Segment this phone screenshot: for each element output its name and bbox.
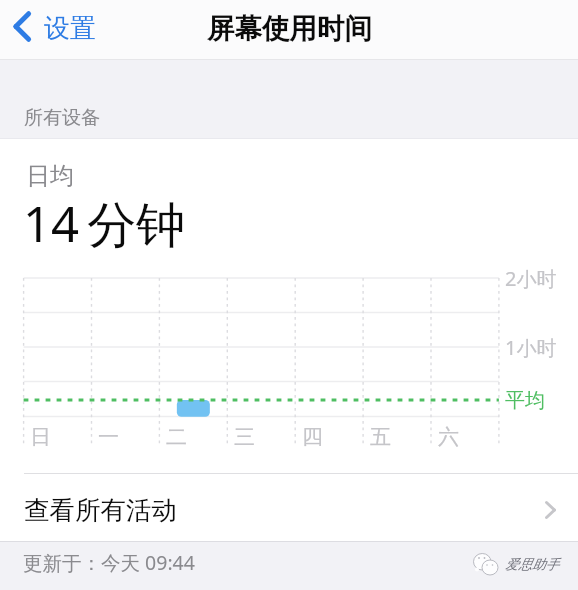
- other: WeChat: [472, 552, 500, 576]
- staticText: 1小时: [505, 334, 557, 361]
- staticText: 日均: [26, 161, 74, 191]
- staticText: 2小时: [505, 265, 557, 292]
- other: Back: [10, 11, 31, 42]
- staticText: 平均: [505, 388, 545, 413]
- staticText: 四: [302, 424, 323, 450]
- staticText: 更新于：今天 09:44: [23, 549, 195, 576]
- staticText: 六: [438, 424, 459, 450]
- staticText: 屏幕使用时间: [207, 12, 372, 47]
- staticText: 五: [370, 424, 391, 450]
- staticText: 二: [166, 424, 187, 450]
- staticText: 爱思助手: [505, 556, 559, 573]
- staticText: 一: [98, 424, 119, 450]
- button[interactable]: Back: [4, 6, 104, 50]
- staticText: 三: [234, 424, 255, 450]
- staticText: 查看所有活动: [24, 494, 177, 526]
- staticText: 所有设备: [24, 106, 100, 130]
- staticText: 设置: [44, 12, 96, 45]
- button[interactable]: 查看所有活动: [0, 477, 578, 543]
- staticText: 日: [30, 424, 51, 450]
- staticText: 14 分钟: [23, 190, 186, 257]
